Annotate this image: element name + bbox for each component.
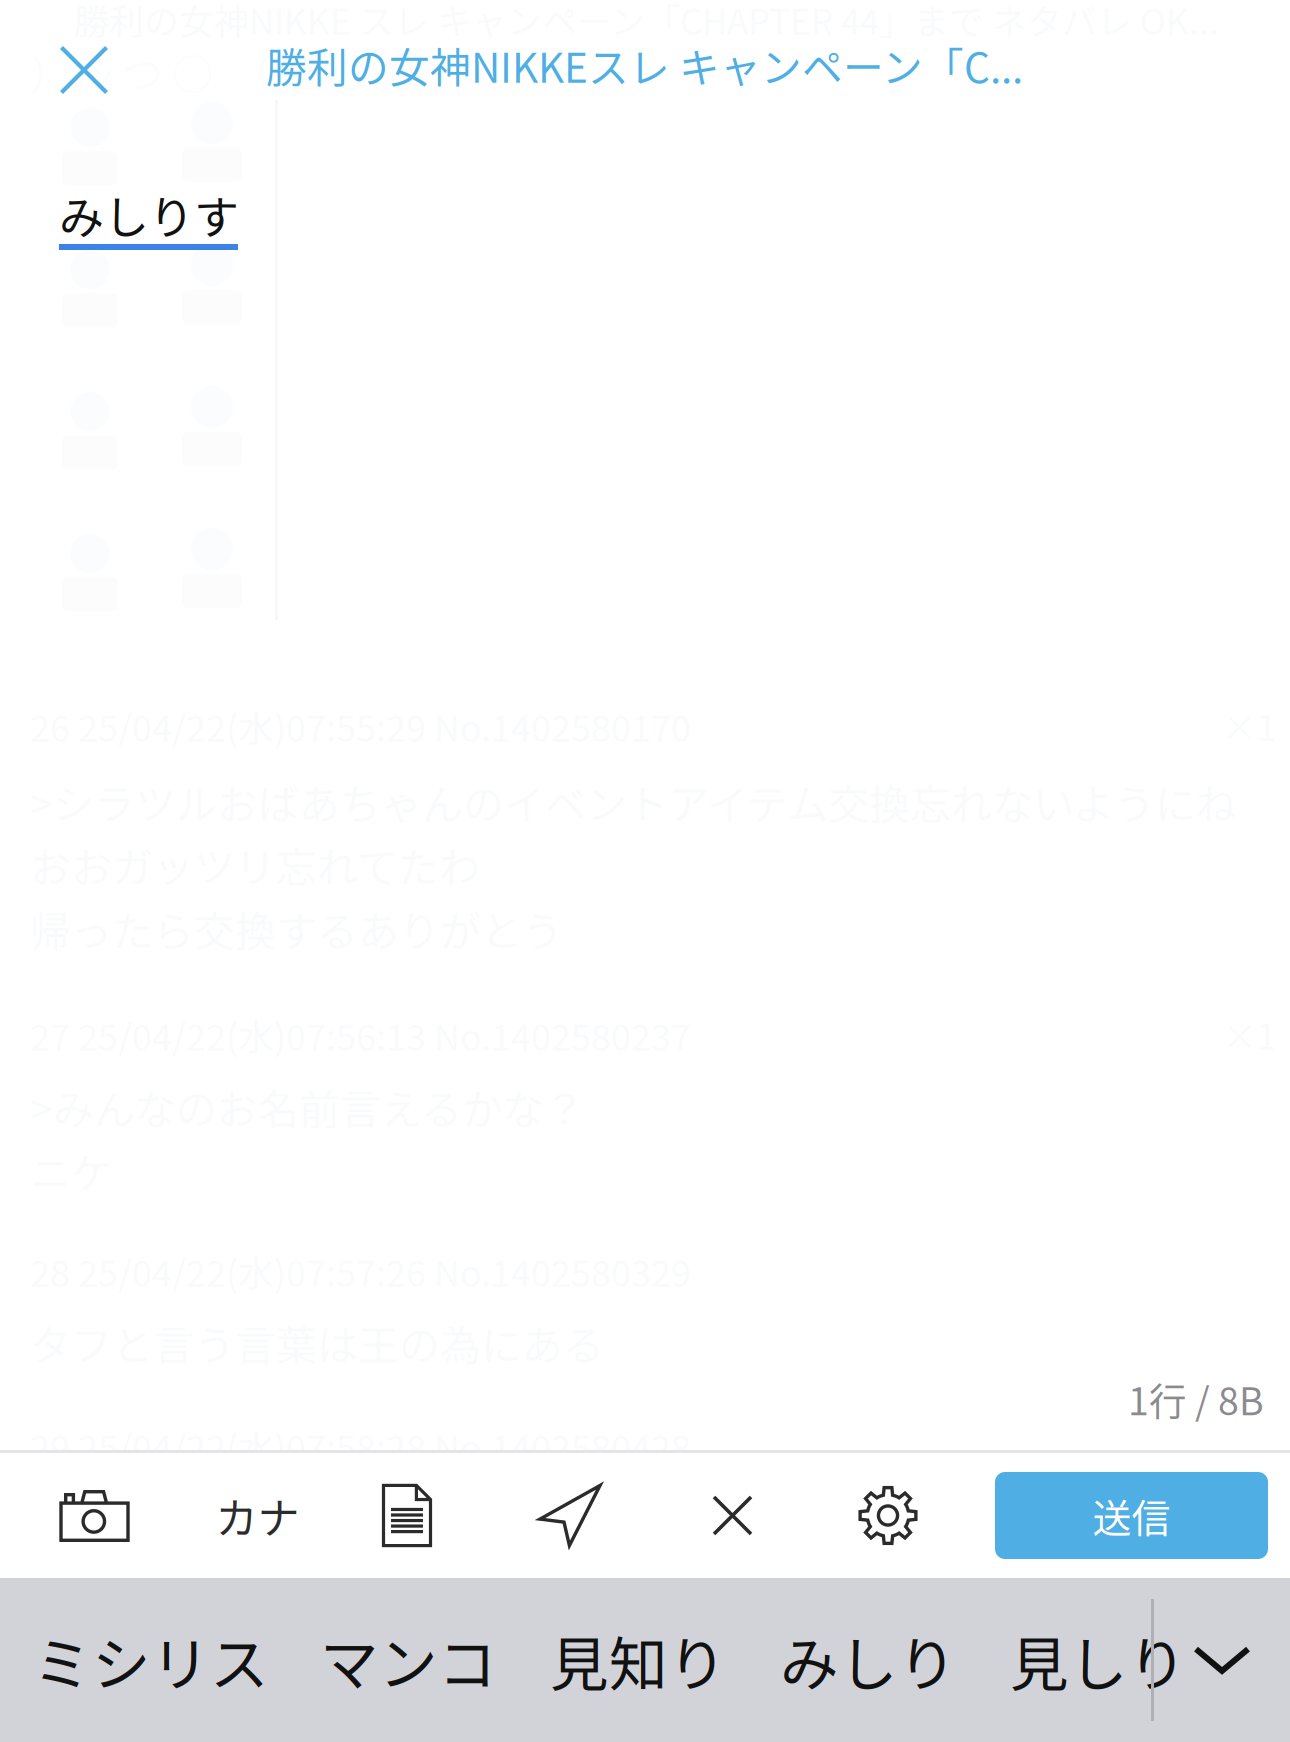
button[interactable]: 閉じる — [0, 5, 168, 135]
staticText: みしりす — [59, 182, 239, 248]
staticText: 1行 / 8B — [1128, 1372, 1264, 1426]
staticText: カナ — [215, 1485, 299, 1546]
staticText: 見知り — [550, 1618, 727, 1702]
staticText: 見しり — [1010, 1618, 1187, 1702]
staticText: 29 25/04/22(水)07:58:28 No.1402580428 — [30, 1420, 691, 1472]
button[interactable]: カナ — [189, 1453, 326, 1578]
button[interactable]: みしり — [780, 1578, 970, 1742]
button[interactable]: クリア — [652, 1453, 813, 1578]
button[interactable]: 候補を展開 — [1168, 1578, 1276, 1742]
button[interactable]: 設定 — [813, 1453, 963, 1578]
button[interactable]: 定型文 — [326, 1453, 488, 1578]
button[interactable]: 見しり — [1010, 1578, 1200, 1742]
button[interactable]: ミシリス — [33, 1578, 273, 1742]
staticText: 送信 — [1092, 1487, 1170, 1544]
staticText: みしり — [780, 1618, 957, 1702]
button[interactable]: マンコ — [320, 1578, 510, 1742]
button[interactable]: 送信先 — [488, 1453, 652, 1578]
staticText: マンコ — [320, 1618, 497, 1702]
staticText: ミシリス — [33, 1618, 269, 1702]
button[interactable]: 送信 — [995, 1472, 1268, 1559]
staticText: 王だよ私が育てたのだ — [30, 1488, 440, 1547]
button[interactable]: 見知り — [550, 1578, 740, 1742]
staticText: 勝利の女神NIKKEスレ キャンペーン「C... — [266, 36, 1023, 94]
button[interactable]: カメラ — [0, 1453, 189, 1578]
staticText: ）ﾉｼ つ ○ （ ２ ５ ０ ） — [30, 42, 472, 101]
